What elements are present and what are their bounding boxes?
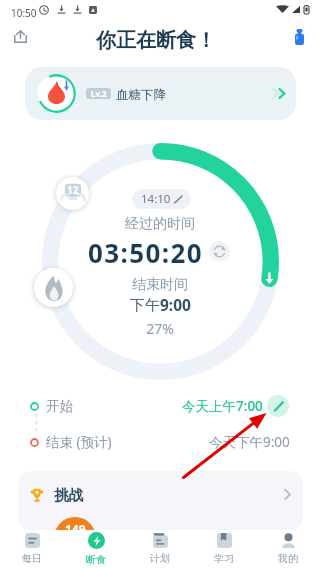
button[interactable]: Refresh xyxy=(209,241,230,262)
staticText: 结束时间 xyxy=(0,276,320,294)
staticText: 27% xyxy=(0,319,320,338)
staticText: Lv.2 xyxy=(91,88,107,99)
staticText: 12 xyxy=(67,183,79,197)
button[interactable]: Edit start time xyxy=(267,395,289,417)
staticText: 结束 (预计) xyxy=(46,433,112,451)
button[interactable]: Water tracker xyxy=(285,22,314,51)
button[interactable]: 14:10 xyxy=(132,189,191,209)
staticText: 9:00 xyxy=(160,294,191,315)
button[interactable]: 断食 xyxy=(64,530,128,568)
button[interactable]: 计划 xyxy=(128,530,192,568)
button[interactable]: Fat burning xyxy=(34,268,73,307)
staticText: 今天上午7:00 xyxy=(182,397,263,415)
button[interactable]: 开始 xyxy=(0,392,320,420)
staticText: 断食 xyxy=(86,553,106,566)
staticText: 你正在断食！ xyxy=(96,28,216,53)
button[interactable]: 12 hour milestone xyxy=(56,177,89,210)
staticText: 14:10 xyxy=(141,191,171,207)
staticText: 挑战 xyxy=(54,486,83,504)
button[interactable]: Share xyxy=(6,22,35,51)
button[interactable] xyxy=(18,471,303,531)
staticText: 开始 xyxy=(46,398,73,415)
staticText: 03:50:20 xyxy=(88,235,204,270)
button[interactable]: 学习 xyxy=(192,530,256,568)
staticText: 每日 xyxy=(22,552,42,565)
staticText: 今天下午9:00 xyxy=(209,433,290,451)
button[interactable] xyxy=(25,67,296,120)
staticText: 计划 xyxy=(150,552,170,565)
button[interactable]: 结束 (预计) xyxy=(0,428,320,456)
staticText: 我的 xyxy=(278,552,298,565)
staticText: 血糖下降 xyxy=(116,87,166,103)
staticText: 学习 xyxy=(214,552,234,565)
button[interactable]: 每日 xyxy=(0,530,64,568)
staticText: 下午 xyxy=(130,296,160,315)
staticText: 149 xyxy=(65,521,86,537)
button[interactable]: 我的 xyxy=(256,530,320,568)
staticText: 10:50 xyxy=(11,6,37,20)
staticText: 经过的时间 xyxy=(0,215,320,233)
